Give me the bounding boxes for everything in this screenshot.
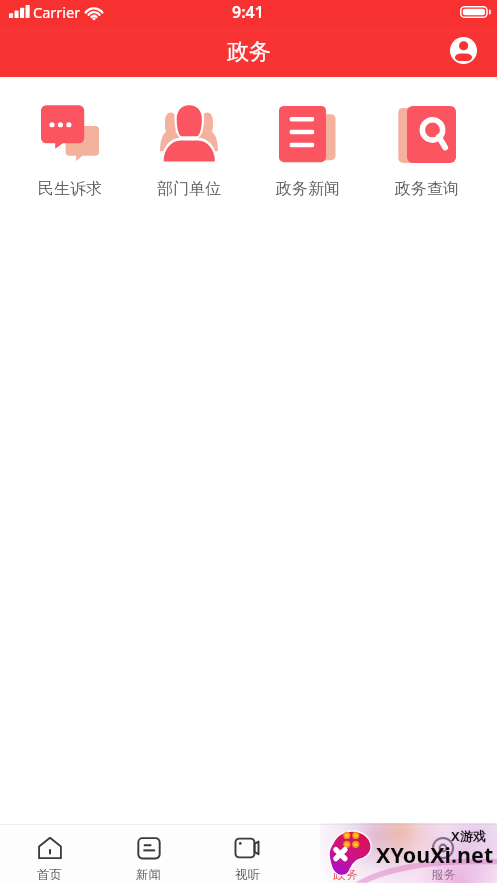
- staticText: 政务: [227, 38, 271, 66]
- button[interactable]: 政务新闻: [248, 103, 367, 199]
- button[interactable]: 服务: [394, 825, 492, 883]
- button[interactable]: 视听: [198, 825, 296, 883]
- staticText: X游戏: [451, 827, 486, 845]
- button[interactable]: 政务查询: [367, 103, 486, 199]
- staticText: XYouXi.net: [376, 840, 494, 869]
- staticText: 新闻: [136, 867, 161, 880]
- staticText: 9:41: [232, 1, 264, 23]
- staticText: Carrier: [33, 2, 81, 22]
- staticText: 首页: [37, 867, 62, 880]
- button[interactable]: 首页: [0, 825, 99, 883]
- staticText: 部门单位: [157, 179, 221, 199]
- staticText: 政务新闻: [276, 179, 340, 199]
- button[interactable]: 政务: [296, 825, 394, 883]
- button[interactable]: 部门单位: [129, 103, 248, 199]
- staticText: 政务: [333, 867, 358, 880]
- button[interactable]: 新闻: [99, 825, 198, 883]
- button[interactable]: Profile: [443, 30, 483, 70]
- staticText: 民生诉求: [38, 179, 102, 199]
- staticText: 服务: [431, 867, 456, 880]
- staticText: 政务查询: [395, 179, 459, 199]
- button[interactable]: 民生诉求: [11, 103, 129, 199]
- staticText: 视听: [235, 867, 260, 880]
